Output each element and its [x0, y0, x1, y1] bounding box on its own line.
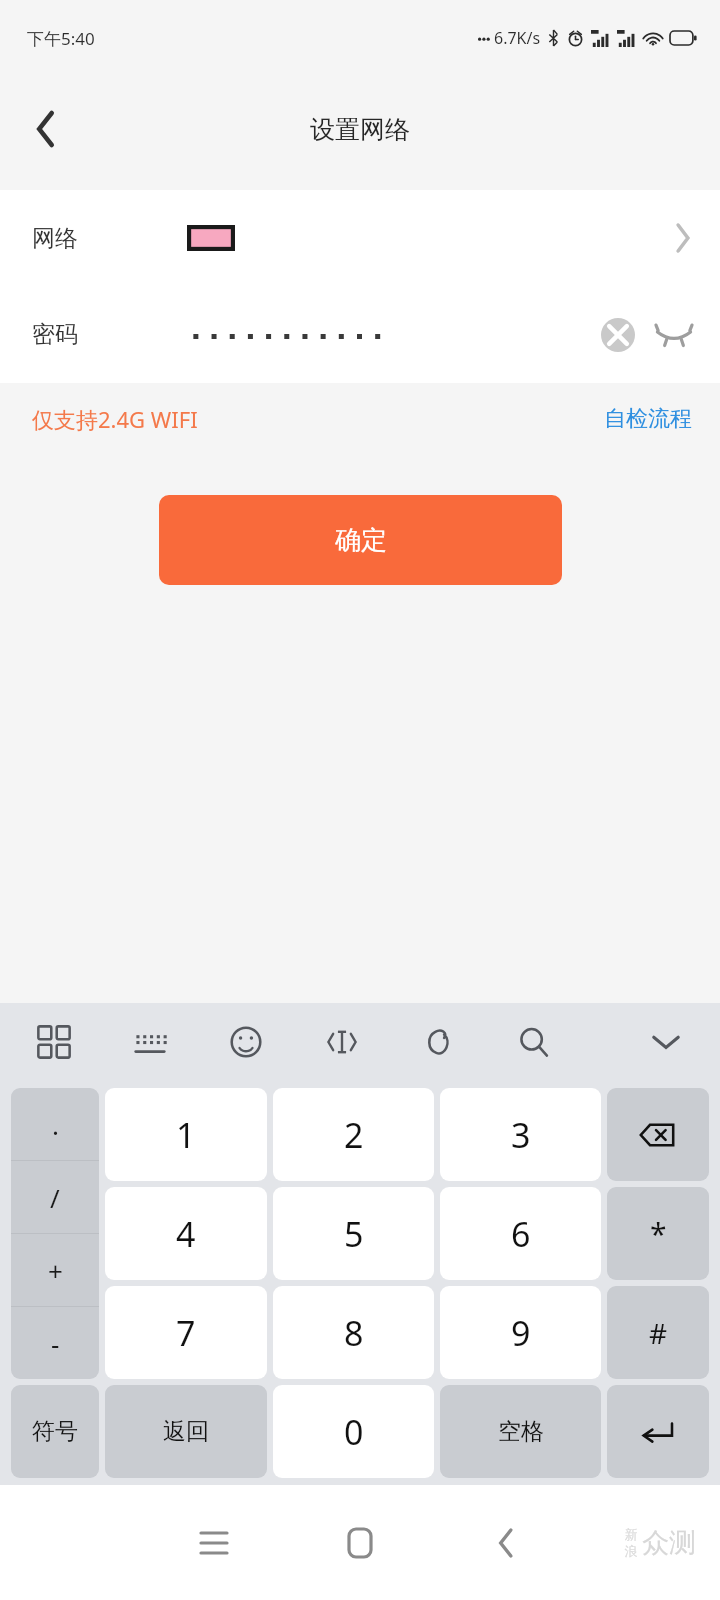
button[interactable]: 网络 — [0, 190, 720, 286]
staticText: 符号 — [32, 1417, 78, 1446]
button[interactable]: Cursor — [314, 1014, 370, 1070]
staticText: 确定 — [335, 524, 387, 557]
button[interactable]: Home — [312, 1495, 408, 1591]
staticText: 2 — [344, 1112, 364, 1158]
button[interactable]: Search — [506, 1014, 562, 1070]
staticText: 6 — [511, 1211, 531, 1257]
button[interactable]: Apps — [26, 1014, 82, 1070]
staticText: 众测 — [642, 1526, 696, 1560]
staticText: + — [48, 1253, 63, 1288]
staticText: 空格 — [498, 1417, 544, 1446]
button[interactable]: / — [11, 1161, 99, 1233]
button[interactable]: - — [11, 1307, 99, 1379]
staticText: 9 — [511, 1310, 531, 1356]
staticText: 设置网络 — [310, 114, 410, 145]
button[interactable]: + — [11, 1234, 99, 1306]
button[interactable]: Back — [458, 1495, 554, 1591]
button[interactable]: Clipboard — [410, 1014, 466, 1070]
button[interactable]: 9 — [440, 1286, 601, 1379]
staticText: 3 — [511, 1112, 531, 1158]
button[interactable]: Show password — [646, 307, 702, 363]
button[interactable]: 返回 — [105, 1385, 267, 1478]
button[interactable]: . — [11, 1088, 99, 1160]
button[interactable]: 5 — [273, 1187, 434, 1280]
staticText: # — [649, 1314, 668, 1352]
staticText: 仅支持2.4G WIFI — [32, 404, 198, 434]
button[interactable]: Emoji — [218, 1014, 274, 1070]
staticText: * — [650, 1213, 667, 1254]
button[interactable]: Enter — [607, 1385, 709, 1478]
button[interactable]: 6 — [440, 1187, 601, 1280]
staticText: 5 — [344, 1211, 364, 1257]
button[interactable]: 空格 — [440, 1385, 601, 1478]
button[interactable]: Recents — [166, 1495, 262, 1591]
button[interactable]: Back — [10, 93, 82, 165]
button[interactable]: 3 — [440, 1088, 601, 1181]
button[interactable]: 7 — [105, 1286, 267, 1379]
staticText: / — [50, 1180, 60, 1215]
button[interactable]: 自检流程 — [604, 405, 692, 433]
staticText: 返回 — [163, 1417, 209, 1446]
button[interactable]: 4 — [105, 1187, 267, 1280]
staticText: 自检流程 — [604, 405, 692, 433]
staticText: 密码 — [32, 320, 187, 349]
button[interactable]: Clear — [590, 307, 646, 363]
button[interactable]: * — [607, 1187, 709, 1280]
staticText: 新浪 — [624, 1526, 638, 1560]
staticText: 0 — [344, 1409, 364, 1455]
button[interactable]: Hide keyboard — [638, 1014, 694, 1070]
button[interactable]: Keyboard — [122, 1014, 178, 1070]
staticText: 下午5:40 — [27, 27, 95, 50]
staticText: 网络 — [32, 224, 187, 253]
staticText: 6.7K/s — [494, 27, 541, 49]
button[interactable]: 确定 — [159, 495, 562, 585]
button[interactable]: 符号 — [11, 1385, 99, 1478]
staticText: 4 — [176, 1211, 196, 1257]
button[interactable]: 密码 — [0, 286, 720, 383]
button[interactable]: 8 — [273, 1286, 434, 1379]
button[interactable]: Backspace — [607, 1088, 709, 1181]
staticText: 7 — [176, 1310, 196, 1356]
staticText: 1 — [176, 1112, 196, 1158]
staticText: 8 — [344, 1310, 364, 1356]
staticText: - — [51, 1326, 60, 1361]
button[interactable]: # — [607, 1286, 709, 1379]
button[interactable]: 2 — [273, 1088, 434, 1181]
staticText: . — [52, 1107, 59, 1142]
button[interactable]: 1 — [105, 1088, 267, 1181]
button[interactable]: 0 — [273, 1385, 434, 1478]
